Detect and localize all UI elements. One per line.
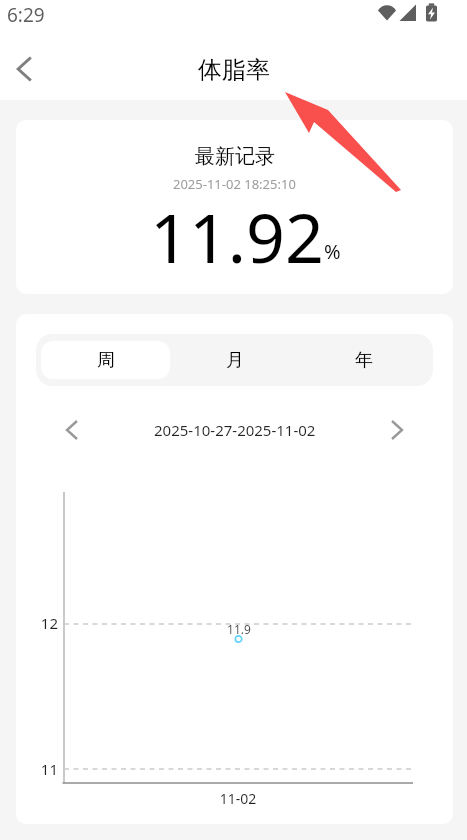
- staticText: 12: [26, 613, 58, 633]
- button[interactable]: Previous period: [54, 412, 90, 448]
- staticText: 体脂率: [198, 55, 270, 85]
- staticText: 最新记录: [195, 144, 275, 169]
- staticText: 11.9: [209, 621, 269, 637]
- staticText: 2025-11-02 18:25:10: [173, 175, 296, 193]
- button[interactable]: 月: [170, 341, 299, 379]
- staticText: 11-02: [198, 789, 278, 808]
- staticText: 11.92: [150, 190, 324, 283]
- button[interactable]: Next period: [379, 412, 415, 448]
- staticText: 月: [226, 349, 244, 372]
- staticText: %: [324, 238, 341, 265]
- button[interactable]: 周: [41, 341, 170, 379]
- button[interactable]: 年: [299, 341, 428, 379]
- staticText: 11: [26, 759, 58, 779]
- staticText: 6:29: [7, 2, 45, 28]
- staticText: 周: [97, 349, 115, 372]
- staticText: 2025-10-27-2025-11-02: [154, 420, 316, 440]
- staticText: 年: [355, 349, 373, 372]
- button[interactable]: Back: [2, 47, 46, 91]
